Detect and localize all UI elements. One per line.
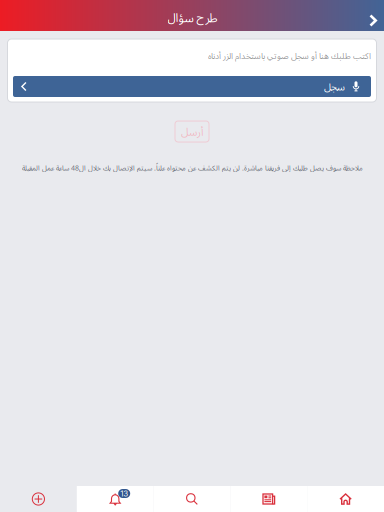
button[interactable]: Search [154, 486, 230, 512]
staticText: اكتب طلبك هنا أو سجل صوتي باستخدام الزر … [207, 50, 370, 62]
staticText: 13 [120, 489, 128, 498]
staticText: سجل [323, 80, 344, 93]
button[interactable]: Home [307, 486, 384, 512]
staticText: ملاحظة سوف يصل طلبك إلى فريقنا مباشرة. ل… [21, 163, 362, 172]
button[interactable]: Next [362, 0, 384, 31]
button[interactable]: أرسل [175, 121, 209, 142]
button[interactable]: سجل [13, 76, 371, 97]
button[interactable]: Add [0, 486, 77, 512]
staticText: طرح سؤال [167, 9, 217, 26]
button[interactable]: Notifications [77, 486, 154, 512]
button[interactable]: News [230, 486, 307, 512]
staticText: أرسل [180, 124, 203, 139]
